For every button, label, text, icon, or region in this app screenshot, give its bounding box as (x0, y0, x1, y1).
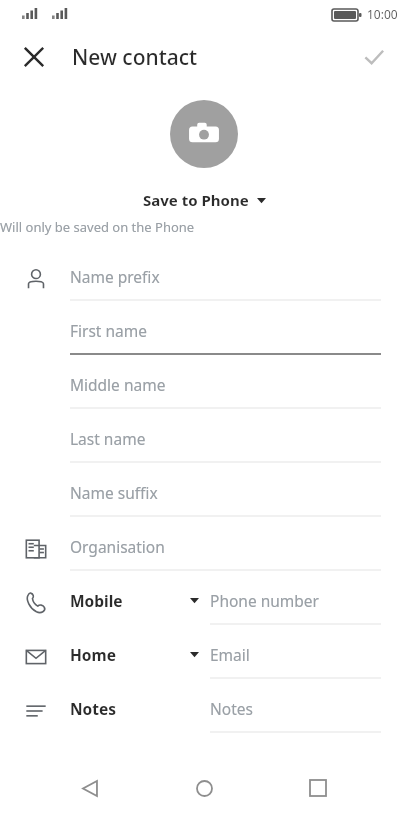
staticText: Mobile (70, 590, 123, 611)
staticText: Last name (70, 428, 146, 449)
button[interactable]: Middle name (0, 360, 408, 414)
staticText: Home (70, 644, 116, 665)
button[interactable]: Organisation (0, 522, 408, 576)
button[interactable]: Add photo (170, 100, 238, 168)
button[interactable]: Save (350, 33, 398, 81)
staticText: New contact (72, 43, 198, 72)
staticText: Name suffix (70, 482, 158, 503)
staticText: Save to Phone (143, 190, 249, 210)
staticText: Organisation (70, 536, 165, 557)
staticText: Will only be saved on the Phone (0, 218, 408, 236)
button[interactable]: Home (0, 630, 408, 684)
staticText: First name (70, 320, 148, 341)
button[interactable]: Last name (0, 414, 408, 468)
staticText: Phone number (210, 590, 320, 611)
staticText: Email (210, 644, 250, 665)
button[interactable]: Mobile (0, 576, 408, 630)
button[interactable]: Notes (0, 684, 408, 738)
staticText: Notes (70, 698, 117, 719)
button[interactable]: Back (66, 764, 114, 812)
staticText: Name prefix (70, 266, 160, 287)
button[interactable]: Recents (294, 764, 342, 812)
staticText: Notes (210, 698, 253, 719)
button[interactable]: Close (10, 33, 58, 81)
staticText: 10:00 (367, 6, 398, 22)
button[interactable]: Name suffix (0, 468, 408, 522)
button[interactable]: First name (0, 306, 408, 360)
button[interactable]: Name prefix (0, 252, 408, 306)
staticText: Middle name (70, 374, 166, 395)
button[interactable]: Home (180, 764, 228, 812)
button[interactable]: Save to Phone (137, 188, 272, 212)
